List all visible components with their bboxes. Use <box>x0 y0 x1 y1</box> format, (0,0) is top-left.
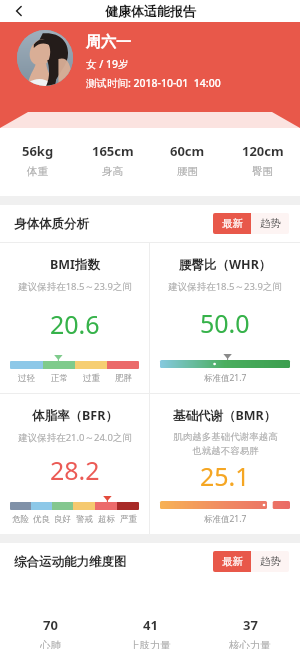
button[interactable]: 最新 <box>213 213 251 234</box>
staticText: 25.1 <box>200 459 250 493</box>
staticText: 120cm <box>242 142 284 160</box>
staticText: 正常 <box>51 373 68 384</box>
staticText: 41 <box>143 616 158 634</box>
staticText: 优良 <box>33 514 50 525</box>
button[interactable]: 基础代谢（BMR） <box>150 394 300 534</box>
staticText: 过重 <box>83 373 100 384</box>
staticText: 50.0 <box>200 306 250 340</box>
staticText: 最新 <box>222 555 243 568</box>
staticText: 警戒 <box>76 514 93 525</box>
button[interactable]: 趋势 <box>251 551 289 572</box>
button[interactable]: 腰臀比（WHR） <box>150 243 300 393</box>
staticText: 70 <box>43 616 58 634</box>
staticText: 体重 <box>27 165 48 178</box>
staticText: 臀围 <box>252 165 273 178</box>
button[interactable]: 体脂率（BFR） <box>0 394 149 534</box>
staticText: 腰臀比（WHR） <box>179 256 272 273</box>
staticText: 身体体质分析 <box>14 216 89 232</box>
staticText: 核心力量 <box>229 639 271 649</box>
staticText: 28.2 <box>50 453 100 487</box>
staticText: 建议保持在18.5～23.9之间 <box>168 280 282 293</box>
staticText: 良好 <box>54 514 71 525</box>
staticText: 周六一 <box>86 33 131 52</box>
staticText: 趋势 <box>260 217 281 230</box>
staticText: 严重 <box>120 514 137 525</box>
button[interactable]: 趋势 <box>251 213 289 234</box>
staticText: 肥胖 <box>115 373 132 384</box>
staticText: 也就越不容易胖 <box>192 445 259 457</box>
button[interactable]: BMI指数 <box>0 243 149 393</box>
staticText: 女 / 19岁 <box>86 57 129 71</box>
staticText: 165cm <box>92 142 134 160</box>
staticText: 过轻 <box>18 373 35 384</box>
staticText: 心肺 <box>40 639 61 649</box>
staticText: 综合运动能力维度图 <box>14 554 127 570</box>
staticText: 身高 <box>102 165 123 178</box>
staticText: 20.6 <box>50 307 100 341</box>
staticText: 最新 <box>222 217 243 230</box>
staticText: 基础代谢（BMR） <box>173 407 277 424</box>
staticText: 腰围 <box>177 165 198 178</box>
staticText: 超标 <box>98 514 115 525</box>
button[interactable]: 最新 <box>213 551 251 572</box>
staticText: 肌肉越多基础代谢率越高 <box>173 431 278 443</box>
staticText: 上肢力量 <box>129 639 171 649</box>
staticText: 趋势 <box>260 555 281 568</box>
staticText: 体脂率（BFR） <box>32 407 118 424</box>
button[interactable]: Back <box>6 0 32 22</box>
staticText: 测试时间: 2018-10-01 14:00 <box>86 76 221 90</box>
staticText: 建议保持在18.5～23.9之间 <box>18 280 132 293</box>
staticText: 危险 <box>12 514 29 525</box>
staticText: 标准值21.7 <box>204 372 247 384</box>
staticText: 37 <box>243 616 258 634</box>
staticText: 健康体适能报告 <box>105 3 196 19</box>
staticText: 标准值21.7 <box>204 513 247 525</box>
staticText: BMI指数 <box>50 256 100 273</box>
staticText: 56kg <box>22 142 54 160</box>
staticText: 建议保持在21.0～24.0之间 <box>18 431 132 444</box>
staticText: 60cm <box>170 142 205 160</box>
